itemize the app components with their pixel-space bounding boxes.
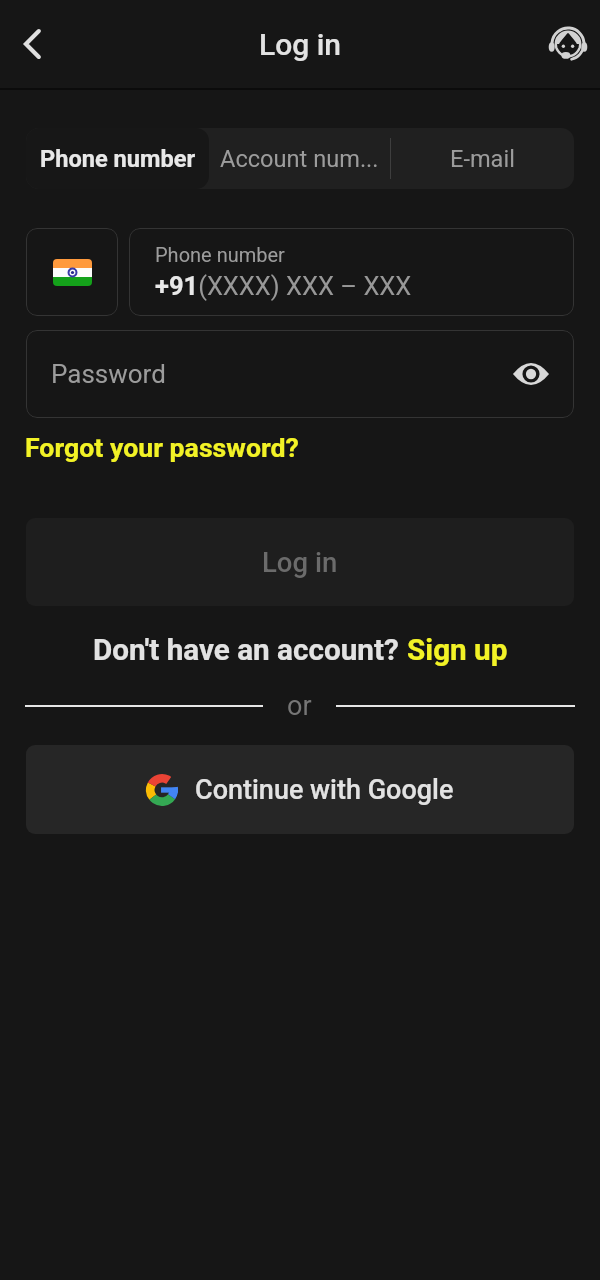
button[interactable]: Phone number — [129, 228, 574, 316]
button[interactable]: Back — [7, 20, 55, 68]
button[interactable]: Password — [26, 330, 574, 418]
staticText: Log in — [262, 546, 338, 578]
button[interactable]: Sign up — [407, 632, 508, 667]
button[interactable]: Show password — [509, 352, 553, 396]
button[interactable]: Phone number — [26, 128, 209, 189]
staticText: Don't have an account? — [93, 632, 407, 667]
button[interactable]: Forgot your password? — [25, 432, 299, 463]
button[interactable]: Customer support — [542, 18, 594, 70]
button[interactable]: Continue with Google — [26, 745, 574, 834]
staticText: Phone number — [40, 145, 196, 173]
button[interactable]: Account num... — [209, 128, 390, 189]
staticText: Account num... — [220, 145, 379, 173]
staticText: Phone number — [155, 243, 285, 266]
button[interactable]: E-mail — [391, 128, 574, 189]
staticText: Log in — [259, 27, 342, 62]
staticText: Sign up — [407, 632, 508, 667]
staticText: Continue with Google — [195, 774, 454, 806]
staticText: E-mail — [450, 145, 515, 173]
staticText: +91(XXXX) XXX – XXX — [155, 271, 412, 301]
staticText: or — [287, 690, 312, 722]
button[interactable]: Log in — [26, 518, 574, 606]
staticText: Password — [51, 359, 166, 389]
button[interactable]: Select country code — [26, 228, 118, 316]
